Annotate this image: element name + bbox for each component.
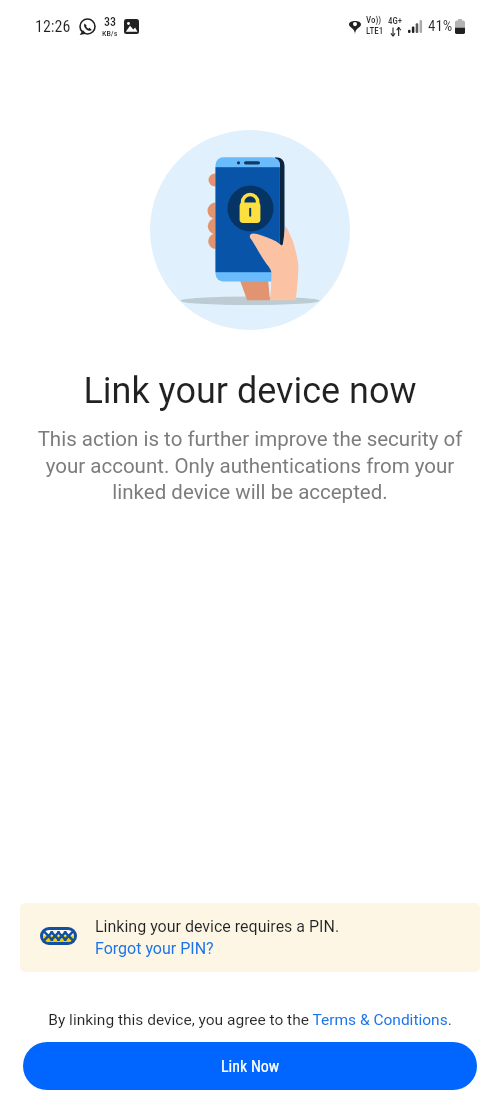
staticText: This action is to further improve the se… xyxy=(32,427,468,504)
staticText: 41% xyxy=(428,17,453,35)
staticText: Vo)) xyxy=(366,15,382,26)
staticText: By linking this device, you agree to the… xyxy=(0,1011,500,1029)
button[interactable]: Linking your device requires a PIN. xyxy=(20,903,480,972)
staticText: KB/s xyxy=(102,29,118,38)
staticText: Linking your device requires a PIN. xyxy=(95,917,340,936)
staticText: 12:26 xyxy=(35,17,71,36)
staticText: 33 xyxy=(104,15,117,29)
button[interactable]: Link Now xyxy=(23,1042,477,1090)
staticText: Link Now xyxy=(221,1057,280,1076)
button[interactable]: Forgot your PIN? xyxy=(95,939,214,958)
staticText: Link your device now xyxy=(0,370,500,412)
staticText: 4G+ xyxy=(388,16,403,27)
staticText: LTE1 xyxy=(366,26,384,37)
